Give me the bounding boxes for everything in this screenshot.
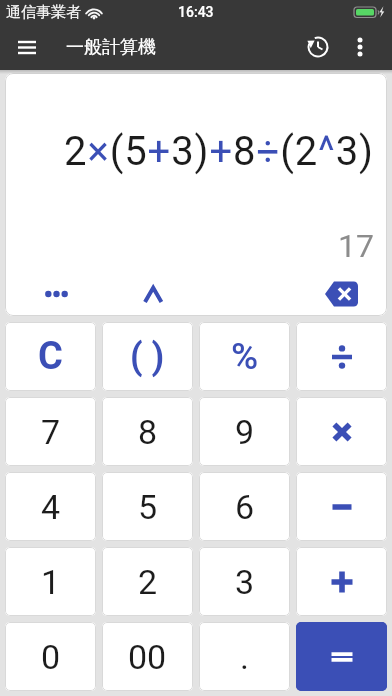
button[interactable] [296, 472, 387, 541]
staticText: 6 [235, 487, 255, 527]
button[interactable] [290, 24, 338, 70]
button[interactable]: 7 [5, 397, 96, 466]
staticText: 2 [138, 562, 158, 602]
staticText: 8 [138, 412, 158, 452]
button[interactable] [296, 397, 387, 466]
staticText: 2×(5+3)+8÷(2^3) [64, 128, 374, 175]
staticText: 00 [128, 637, 167, 677]
button[interactable] [5, 276, 100, 312]
button[interactable]: . [199, 622, 290, 691]
button[interactable] [338, 24, 382, 70]
staticText: 9 [235, 412, 255, 452]
staticText: C [38, 334, 63, 379]
button[interactable]: 9 [199, 397, 290, 466]
staticText: 17 [338, 227, 374, 265]
staticText: % [231, 335, 259, 378]
staticText: 16:43 [178, 4, 214, 20]
button[interactable] [291, 276, 387, 312]
button[interactable] [296, 322, 387, 391]
button[interactable]: % [199, 322, 290, 391]
button[interactable]: ( ) [102, 322, 193, 391]
staticText: 5 [138, 487, 158, 527]
button[interactable]: 00 [102, 622, 193, 691]
button[interactable]: 5 [102, 472, 193, 541]
staticText: ( ) [130, 336, 165, 378]
staticText: . [240, 637, 249, 677]
button[interactable]: 4 [5, 472, 96, 541]
button[interactable] [0, 24, 54, 70]
button[interactable] [296, 622, 387, 691]
button[interactable] [296, 547, 387, 616]
button[interactable]: 1 [5, 547, 96, 616]
staticText: 通信事業者 [6, 3, 81, 22]
button[interactable]: 6 [199, 472, 290, 541]
button[interactable] [100, 276, 195, 312]
staticText: 1 [41, 562, 61, 602]
button[interactable]: 2 [102, 547, 193, 616]
staticText: 4 [41, 487, 61, 527]
staticText: 7 [41, 412, 61, 452]
button[interactable]: 8 [102, 397, 193, 466]
staticText: 0 [41, 637, 61, 677]
staticText: 3 [235, 562, 255, 602]
button[interactable]: 0 [5, 622, 96, 691]
button[interactable]: 3 [199, 547, 290, 616]
button[interactable]: C [5, 322, 96, 391]
staticText: 一般計算機 [66, 36, 156, 59]
